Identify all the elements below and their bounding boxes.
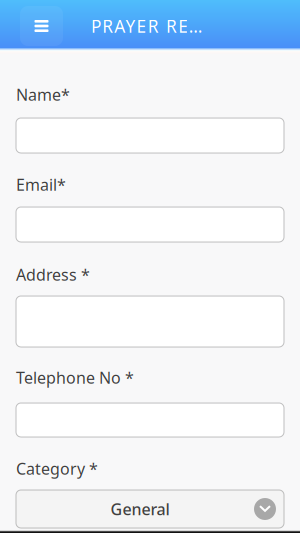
staticText: PRAYER RE… <box>91 14 203 37</box>
button[interactable] <box>16 296 284 347</box>
button[interactable]: General <box>16 490 284 528</box>
staticText: Address * <box>16 264 90 285</box>
button[interactable] <box>16 403 284 437</box>
staticText: Name* <box>16 84 70 105</box>
staticText: General <box>110 498 169 520</box>
staticText: Telephone No * <box>16 367 134 388</box>
button[interactable]: Menu <box>20 6 63 46</box>
button[interactable] <box>16 207 284 242</box>
button[interactable] <box>16 118 284 153</box>
staticText: Email* <box>16 174 66 195</box>
staticText: Category * <box>16 458 98 479</box>
